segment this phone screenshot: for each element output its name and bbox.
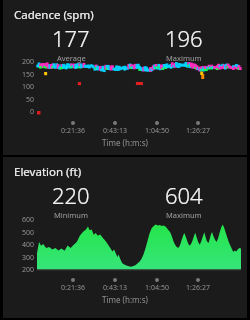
button[interactable]: Cadence (spm) bbox=[3, 0, 247, 155]
staticText: 600 bbox=[10, 215, 34, 225]
staticText: 200 bbox=[10, 57, 34, 67]
staticText: 500 bbox=[10, 228, 34, 238]
staticText: 177 bbox=[52, 23, 90, 53]
staticText: 1:26:27 bbox=[176, 126, 220, 136]
staticText: Cadence (spm) bbox=[14, 7, 94, 23]
staticText: Minimum bbox=[54, 210, 88, 220]
staticText: Average bbox=[57, 53, 86, 63]
staticText: 220 bbox=[52, 180, 90, 210]
staticText: 300 bbox=[10, 253, 34, 263]
staticText: 196 bbox=[165, 23, 203, 53]
staticText: 100 bbox=[10, 82, 34, 92]
staticText: 0:21:36 bbox=[51, 283, 95, 293]
staticText: Time (h:m:s) bbox=[3, 137, 247, 148]
staticText: 400 bbox=[10, 240, 34, 250]
staticText: 0:43:13 bbox=[93, 283, 137, 293]
button[interactable]: Elevation (ft) bbox=[3, 157, 247, 318]
staticText: 1:04:50 bbox=[135, 283, 179, 293]
staticText: 1:04:50 bbox=[135, 126, 179, 136]
staticText: 604 bbox=[165, 180, 203, 210]
button[interactable]: 220 bbox=[26, 180, 116, 220]
staticText: 0:43:13 bbox=[93, 126, 137, 136]
button[interactable]: 604 bbox=[139, 180, 229, 220]
staticText: 1:26:27 bbox=[176, 283, 220, 293]
staticText: 0 bbox=[10, 107, 34, 117]
button[interactable]: 177 bbox=[26, 23, 116, 63]
staticText: 0:21:36 bbox=[51, 126, 95, 136]
staticText: 150 bbox=[10, 70, 34, 80]
button[interactable]: 196 bbox=[139, 23, 229, 63]
staticText: 50 bbox=[10, 95, 34, 105]
staticText: Elevation (ft) bbox=[14, 164, 82, 180]
staticText: Maximum bbox=[166, 210, 202, 220]
staticText: 200 bbox=[10, 265, 34, 275]
staticText: Maximum bbox=[166, 53, 202, 63]
staticText: Time (h:m:s) bbox=[3, 294, 247, 305]
